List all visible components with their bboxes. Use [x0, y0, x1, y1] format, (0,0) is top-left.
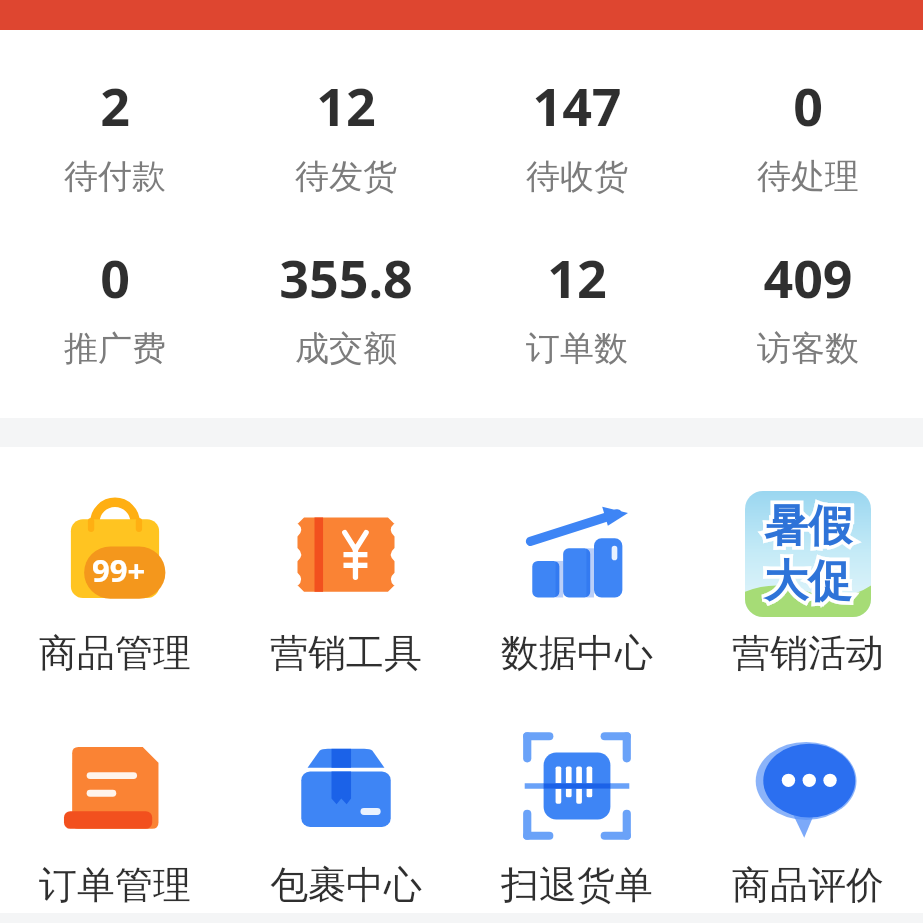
staticText: 大促 — [764, 554, 852, 609]
button[interactable]: 包裹中心 — [230, 723, 461, 909]
staticText: 12 — [316, 70, 376, 141]
staticText: 营销活动 — [732, 629, 884, 677]
staticText: 订单数 — [526, 327, 628, 370]
button[interactable]: 147 — [461, 70, 692, 198]
staticText: 待发货 — [295, 155, 397, 198]
other: 营销工具 — [283, 491, 409, 617]
button[interactable]: 2 — [0, 70, 230, 198]
button[interactable]: 订单管理 — [0, 723, 230, 909]
staticText: 待收货 — [526, 155, 628, 198]
other: 订单管理 — [52, 723, 178, 849]
staticText: 2 — [100, 70, 130, 141]
staticText: 营销工具 — [270, 629, 422, 677]
button[interactable]: 数据中心 — [461, 491, 692, 677]
staticText: 包裹中心 — [270, 861, 422, 909]
staticText: 订单管理 — [39, 861, 191, 909]
staticText: 成交额 — [295, 327, 397, 370]
staticText: 数据中心 — [501, 629, 653, 677]
button[interactable]: 扫退货单 — [461, 723, 692, 909]
staticText: 大促 — [764, 554, 852, 609]
button[interactable]: 12 — [461, 242, 692, 370]
staticText: 99+ — [92, 549, 146, 591]
staticText: 待处理 — [757, 155, 859, 198]
button[interactable]: 商品管理 — [0, 491, 230, 677]
other: 包裹中心 — [283, 723, 409, 849]
other: 扫退货单 — [514, 723, 640, 849]
staticText: 暑假 — [764, 499, 852, 554]
other: 营销活动 — [745, 491, 871, 617]
staticText: 147 — [532, 70, 622, 141]
staticText: 待付款 — [64, 155, 166, 198]
staticText: 商品评价 — [732, 861, 884, 909]
staticText: 409 — [763, 242, 853, 313]
staticText: 暑假 — [764, 499, 852, 554]
staticText: 0 — [793, 70, 823, 141]
button[interactable]: 商品评价 — [692, 723, 923, 909]
staticText: 扫退货单 — [501, 861, 653, 909]
other: 商品评价 — [745, 723, 871, 849]
other: 数据中心 — [514, 491, 640, 617]
button[interactable]: 营销活动 — [692, 491, 923, 677]
staticText: 355.8 — [279, 242, 413, 313]
button[interactable]: 营销工具 — [230, 491, 461, 677]
button[interactable]: 355.8 — [230, 242, 461, 370]
other: 商品管理 — [52, 491, 178, 617]
button[interactable]: 12 — [230, 70, 461, 198]
staticText: 12 — [547, 242, 607, 313]
staticText: 0 — [100, 242, 130, 313]
staticText: 商品管理 — [39, 629, 191, 677]
button[interactable]: 409 — [692, 242, 923, 370]
button[interactable]: 0 — [692, 70, 923, 198]
button[interactable]: 0 — [0, 242, 230, 370]
staticText: 访客数 — [757, 327, 859, 370]
staticText: 推广费 — [64, 327, 166, 370]
